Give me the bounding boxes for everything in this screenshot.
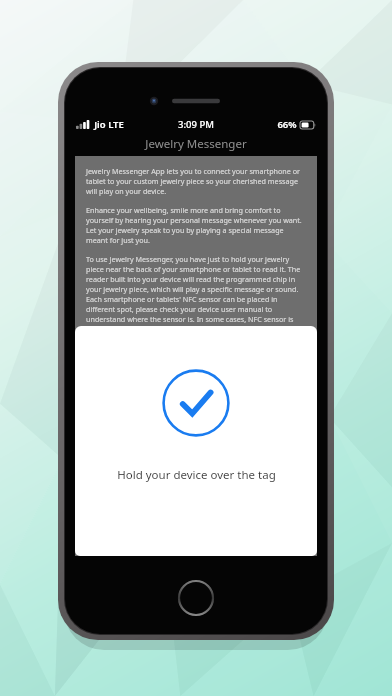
staticText: To use Jewelry Messenger, you have just … — [86, 254, 306, 344]
staticText: Jio LTE — [94, 118, 124, 131]
staticText: 3:09 PM — [178, 118, 214, 131]
button[interactable]: Home — [175, 577, 217, 619]
staticText: 66% — [277, 118, 297, 131]
staticText: Enhance your wellbeing, smile more and b… — [86, 205, 306, 245]
other: Ready to scan — [162, 369, 230, 437]
staticText: Jewelry Messenger App lets you to connec… — [86, 166, 306, 196]
staticText: Hold your device over the tag — [117, 467, 276, 483]
staticText: Jewelry Messenger — [145, 136, 247, 152]
button[interactable]: Ready to scan — [75, 326, 317, 556]
